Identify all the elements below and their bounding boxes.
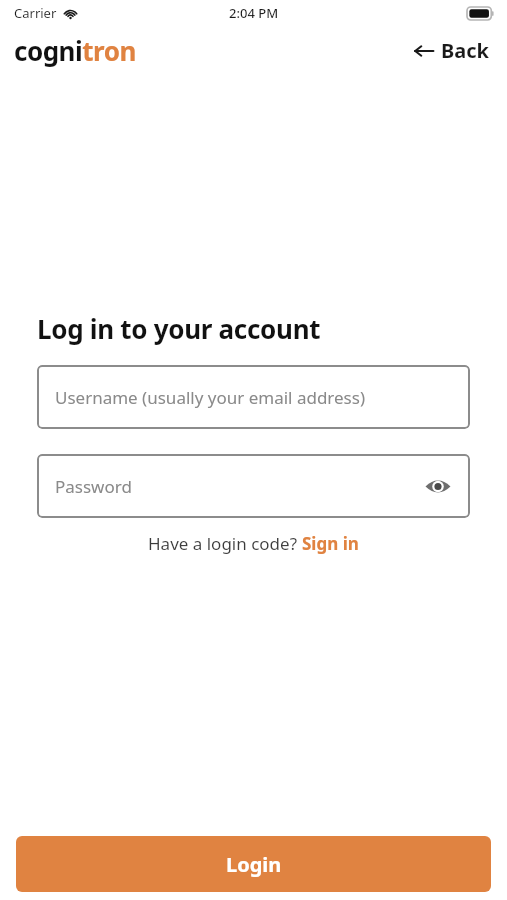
button[interactable]: Show password <box>421 469 455 503</box>
staticText: 2:04 PM <box>229 4 279 22</box>
staticText: Login <box>226 851 282 878</box>
staticText: Sign in <box>302 532 359 555</box>
staticText: Username (usually your email address) <box>55 386 365 409</box>
staticText: Password <box>55 475 132 498</box>
staticText: Carrier <box>14 4 57 22</box>
staticText: Back <box>441 37 489 64</box>
button[interactable]: Login <box>16 836 491 892</box>
button[interactable]: Password <box>37 454 470 518</box>
staticText: Log in to your account <box>37 311 321 346</box>
button[interactable]: Back <box>412 33 491 68</box>
button[interactable]: cognitron <box>14 33 136 68</box>
staticText: Have a login code? <box>148 532 302 555</box>
staticText: cognitron <box>14 33 136 68</box>
button[interactable]: Sign in <box>302 532 359 555</box>
button[interactable]: Username (usually your email address) <box>37 365 470 429</box>
